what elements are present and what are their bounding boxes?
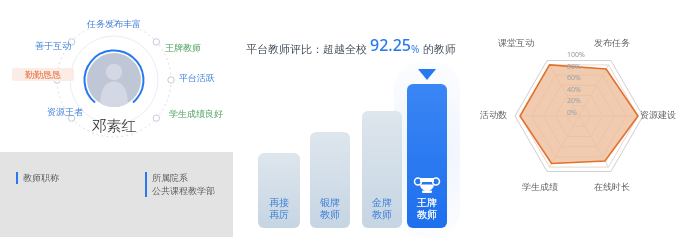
button[interactable]: 在线时长 [594,181,630,192]
staticText: 平台教师评比：超越全校 [246,41,370,56]
button[interactable]: 平台活跃 [166,71,228,84]
button[interactable]: 资源王者 [34,105,96,118]
staticText: 再接 再厉 [269,196,289,221]
staticText: 0% [567,108,577,118]
other: 当前等级指示 [418,69,436,80]
staticText: 92.25 [370,34,411,56]
staticText: 王牌教师 [153,42,213,53]
staticText: 教师职称 [23,172,59,183]
button[interactable]: 资源建设 [640,109,676,120]
staticText: 资源王者 [35,106,95,117]
staticText: 40% [567,85,581,95]
button[interactable]: 学生成绩 [522,181,558,192]
staticText: 学生成绩 [522,181,558,192]
button[interactable]: 再接 再厉 [258,153,300,228]
button[interactable]: 王牌 教师 [407,84,447,228]
staticText: 的教师 [420,41,456,56]
button[interactable]: 银牌 教师 [310,132,350,228]
staticText: 公共课程教学部 [152,185,215,196]
button[interactable]: 金牌 教师 [362,111,402,228]
button[interactable]: 发布任务 [594,37,630,48]
staticText: 80% [567,62,581,72]
staticText: 100% [567,50,585,60]
staticText: 20% [567,96,581,106]
staticText: 活动数 [480,109,507,120]
staticText: 王牌 教师 [417,196,437,221]
staticText: % [411,42,420,56]
staticText: 课堂互动 [498,37,534,48]
staticText: 勤勤恳恳 [13,69,73,80]
staticText: 60% [567,73,581,83]
staticText: 平台活跃 [167,72,227,83]
button[interactable]: 学生成绩良好 [150,107,242,120]
staticText: 任务发布丰富 [71,18,157,29]
button[interactable]: 王牌教师 [152,41,214,54]
staticText: 学生成绩良好 [151,108,241,119]
staticText: 邓素红 [74,117,154,136]
button[interactable]: 课堂互动 [498,37,534,48]
staticText: 金牌 教师 [372,196,392,221]
button[interactable]: 任务发布丰富 [70,17,158,30]
staticText: 在线时长 [594,181,630,192]
button[interactable]: 善于互动 [22,39,84,52]
button[interactable]: 勤勤恳恳 [12,68,74,81]
staticText: 善于互动 [23,40,83,51]
staticText: 银牌 教师 [320,196,340,221]
staticText: 发布任务 [594,37,630,48]
staticText: 所属院系 [152,172,188,183]
staticText: 资源建设 [640,109,676,120]
button[interactable]: 活动数 [480,109,507,120]
